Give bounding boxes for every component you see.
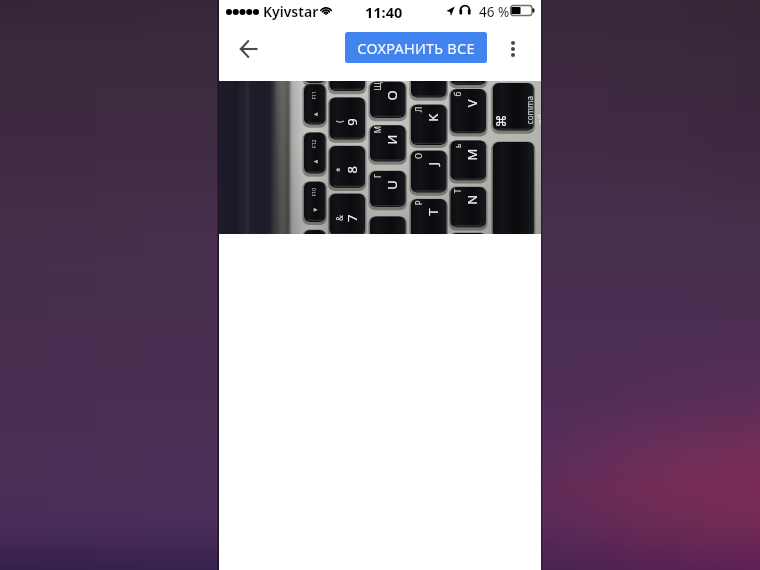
staticText: 46 % [479,3,510,21]
staticText: Kyivstar [263,2,319,21]
staticText: 11:40 [365,2,403,22]
staticText: СОХРАНИТЬ ВСЕ [357,38,475,58]
button[interactable]: Back [226,26,271,71]
button[interactable]: СОХРАНИТЬ ВСЕ [345,32,487,63]
button[interactable]: More options [490,26,535,71]
